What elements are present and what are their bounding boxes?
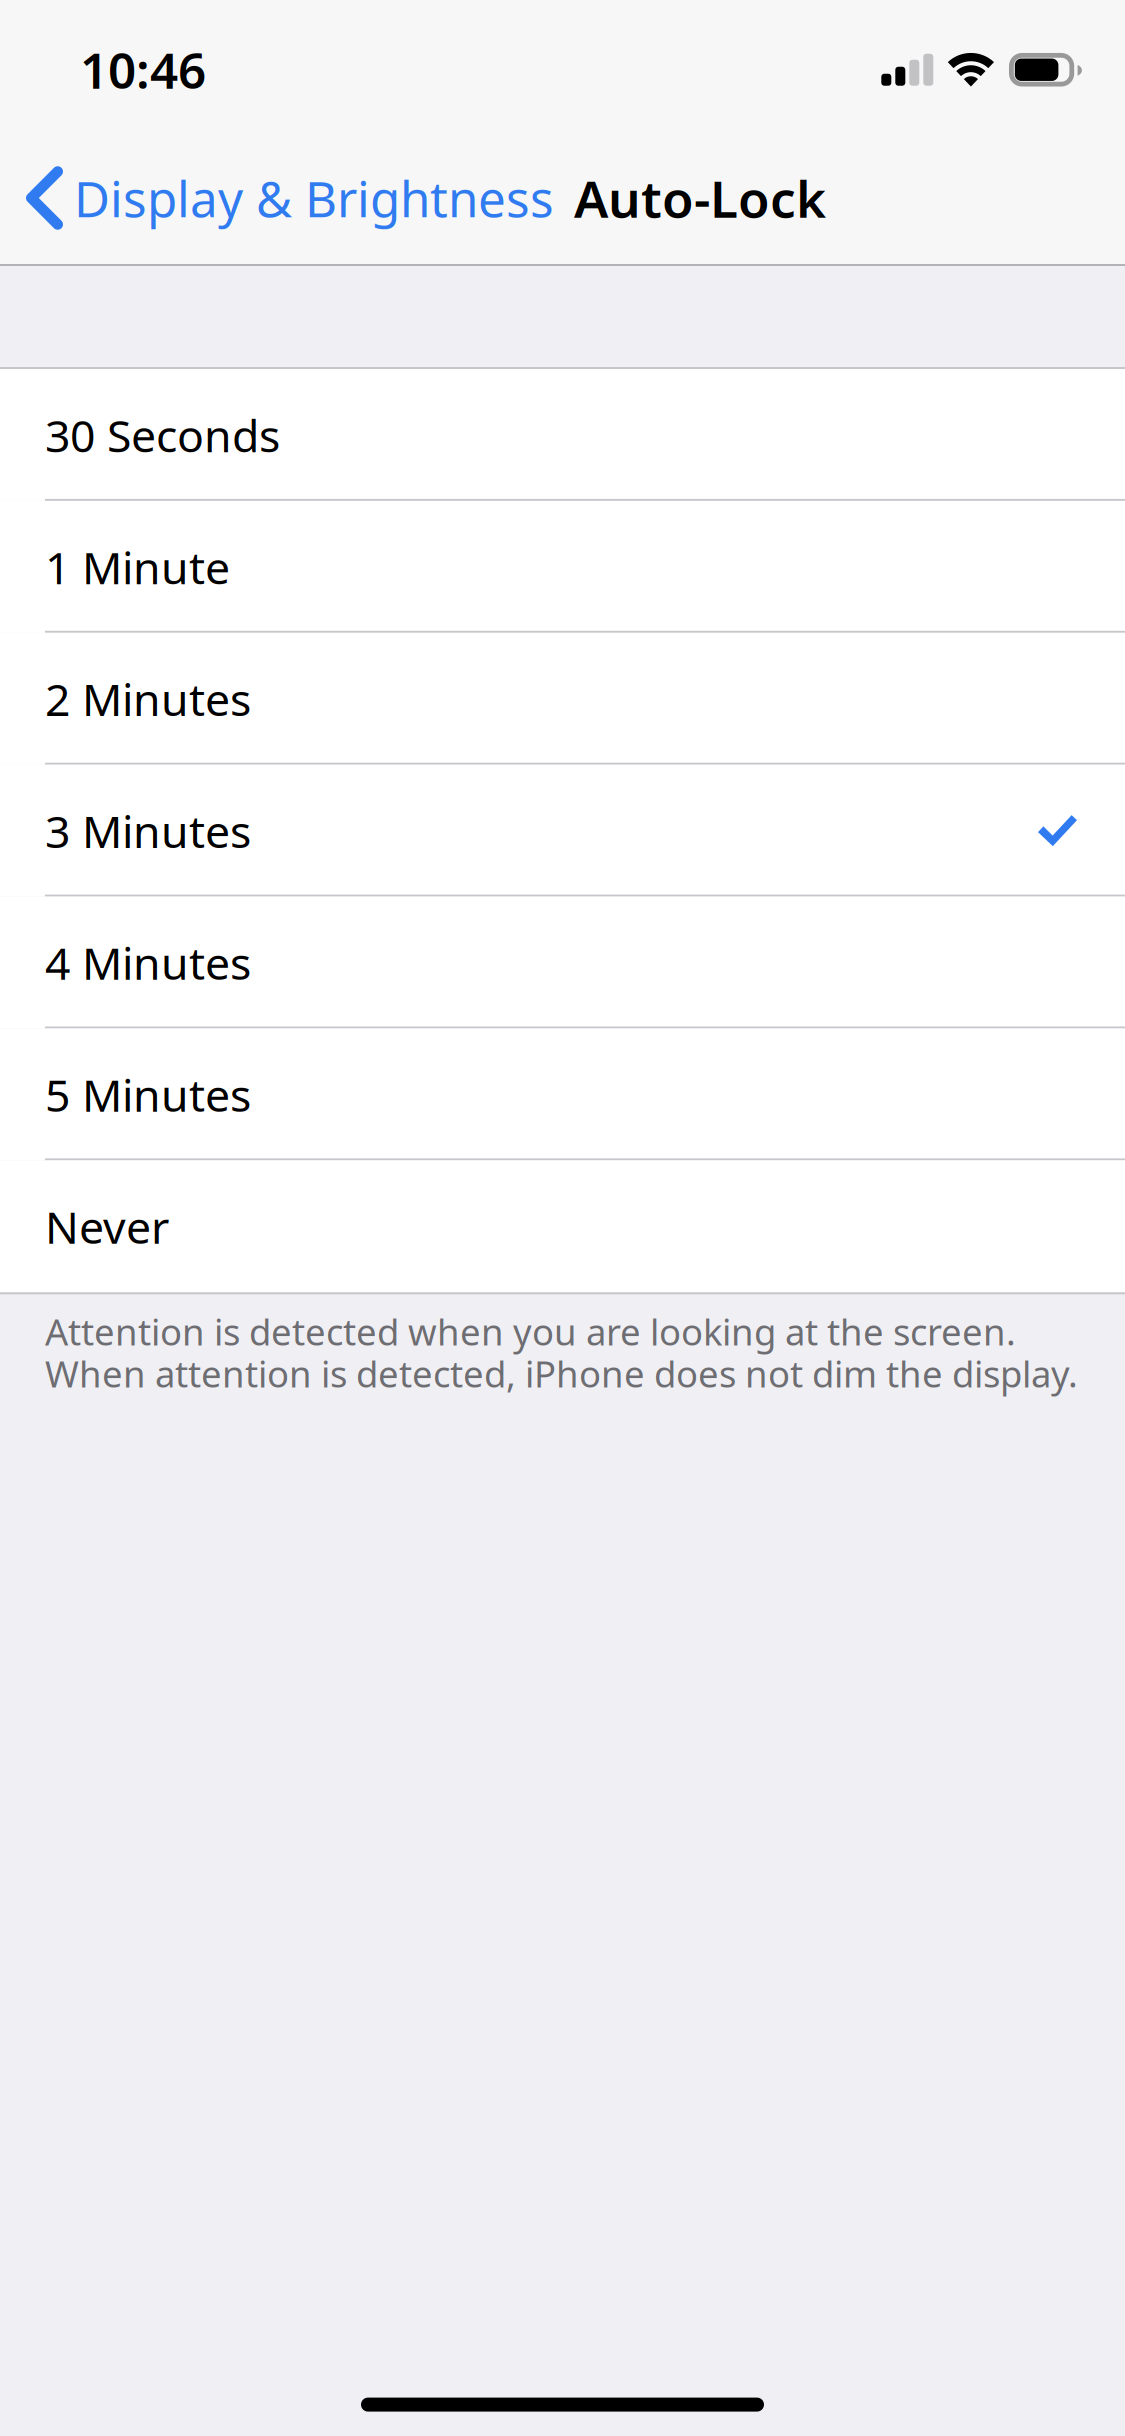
button[interactable]: 5 Minutes — [0, 1028, 1125, 1160]
button[interactable]: 30 Seconds — [0, 369, 1125, 501]
staticText: When attention is detected, iPhone does … — [45, 1349, 1078, 1397]
button[interactable]: Back to Display & Brightness — [0, 132, 560, 264]
staticText: Attention is detected when you are looki… — [45, 1307, 1016, 1355]
button[interactable]: 3 Minutes — [0, 765, 1125, 897]
button[interactable]: 2 Minutes — [0, 633, 1125, 765]
staticText: 2 Minutes — [45, 669, 251, 728]
staticText: 10:46 — [80, 37, 206, 102]
button[interactable]: 1 Minute — [0, 501, 1125, 633]
staticText: 5 Minutes — [45, 1065, 251, 1124]
staticText: 3 Minutes — [45, 801, 251, 860]
button[interactable]: 4 Minutes — [0, 897, 1125, 1028]
staticText: Never — [45, 1197, 169, 1256]
staticText: 30 Seconds — [45, 405, 280, 464]
staticText: 1 Minute — [45, 537, 230, 596]
staticText: Auto-Lock — [574, 164, 826, 232]
button[interactable]: Never — [0, 1160, 1125, 1292]
staticText: 4 Minutes — [45, 933, 251, 992]
staticText: Display & Brightness — [74, 165, 554, 231]
